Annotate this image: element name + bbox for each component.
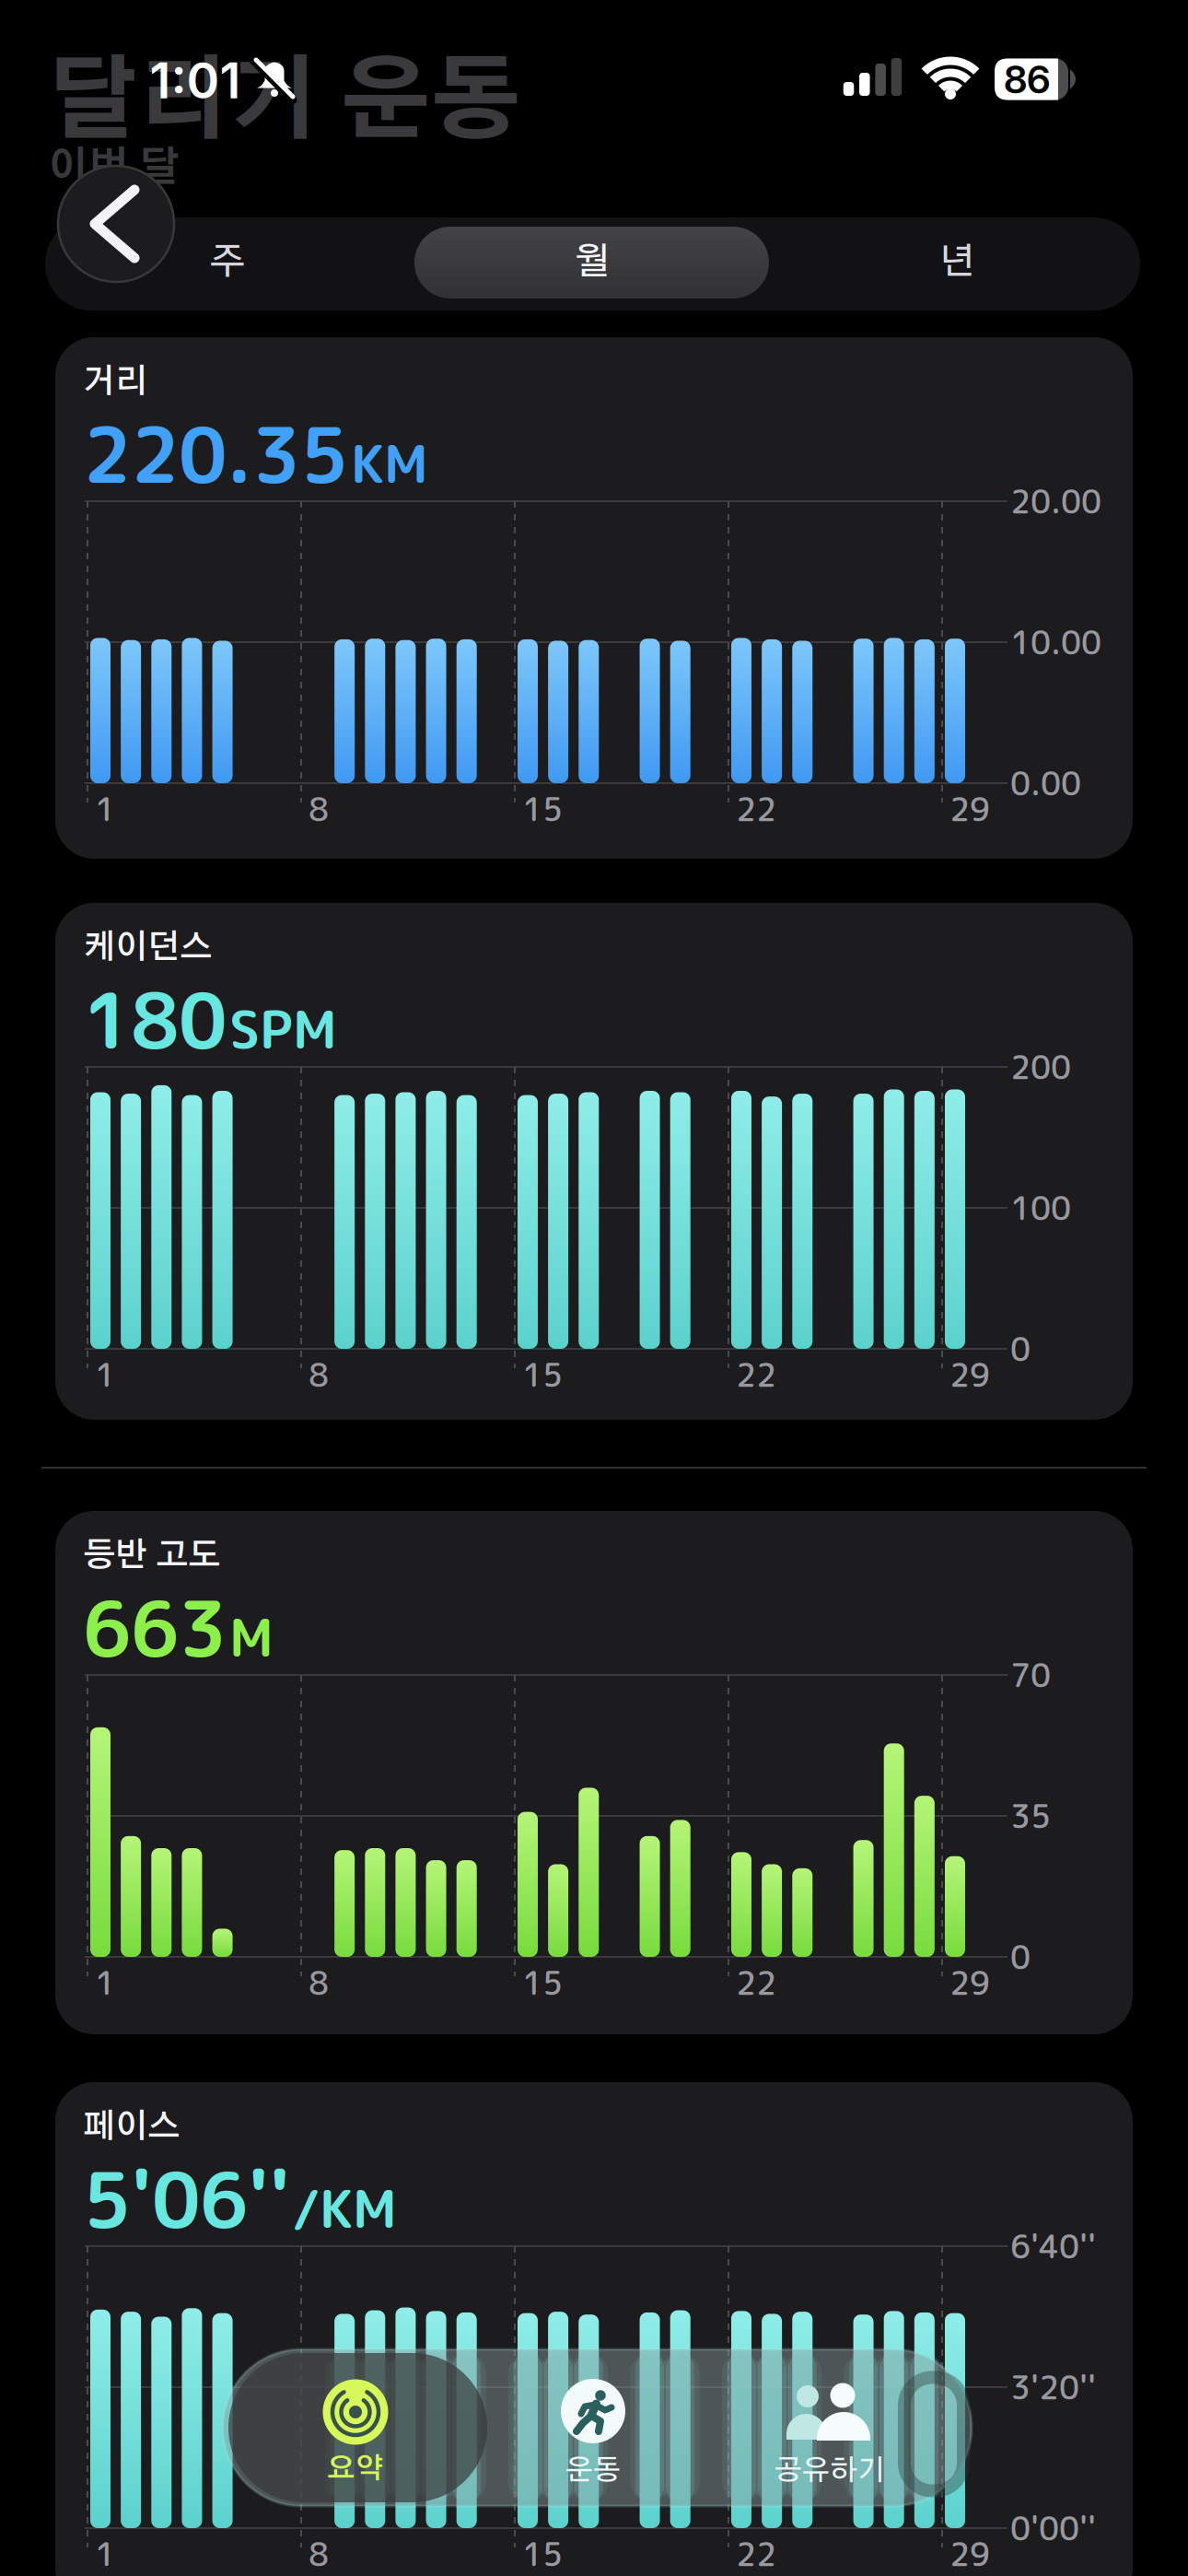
staticText: 8 [309,1352,329,1397]
button[interactable]: 주 [89,221,366,304]
staticText: 15 [522,1352,563,1397]
staticText: 8 [309,1960,329,2005]
staticText: 22 [736,1352,776,1397]
staticText: /KM [293,2171,397,2245]
staticText: 월 [574,244,610,281]
staticText: M [229,1600,274,1673]
staticText: 운동 [565,2457,621,2485]
button[interactable]: 공유하기 [701,2355,959,2506]
staticText: 22 [736,2531,776,2576]
staticText: 100 [1010,1185,1071,1230]
staticText: 주 [210,244,245,281]
staticText: SPM [229,992,337,1065]
staticText: 1:01 [150,50,241,110]
staticText: 86 [1004,56,1050,103]
staticText: 180 [83,967,227,1073]
staticText: 29 [949,1352,990,1397]
staticText: 3'20'' [1010,2365,1096,2410]
staticText: 29 [949,2531,990,2576]
staticText: 20.00 [1010,479,1101,524]
staticText: 이번 달 [48,148,180,189]
staticText: 35 [1010,1793,1051,1838]
staticText: 6'40'' [1010,2224,1096,2269]
staticText: 0 [1010,1326,1031,1371]
staticText: 0 [1010,1934,1031,1979]
staticText: 등반 고도 [83,1540,220,1573]
staticText: 15 [522,1960,563,2005]
staticText: 공유하기 [775,2457,885,2485]
staticText: KM [351,426,428,500]
staticText: 요약 [327,2455,384,2483]
staticText: 8 [309,786,329,831]
staticText: 1 [95,786,115,831]
staticText: 22 [736,786,776,831]
staticText: 페이스 [83,2111,180,2144]
staticText: 220.35 [83,402,348,507]
button[interactable]: 운동 [483,2355,704,2506]
staticText: 5'06'' [83,2146,290,2252]
staticText: 달리기 운동 [48,59,521,149]
staticText: 29 [949,1960,990,2005]
staticText: 15 [522,786,563,831]
button[interactable]: 월 [414,227,769,299]
staticText: 케이던스 [83,931,212,965]
staticText: 200 [1010,1044,1071,1089]
staticText: 거리 [83,366,147,399]
button[interactable]: Back [57,165,175,283]
staticText: 10.00 [1010,620,1101,665]
staticText: 1 [95,1960,115,2005]
staticText: 663 [83,1575,227,1681]
button[interactable]: 요약 [229,2353,487,2504]
staticText: 70 [1010,1652,1051,1697]
staticText: 8 [309,2531,329,2576]
staticText: 1 [95,1352,115,1397]
staticText: 22 [736,1960,776,2005]
staticText: 29 [949,786,990,831]
staticText: 년 [939,244,975,281]
staticText: 1 [95,2531,115,2576]
staticText: 0'00'' [1010,2506,1096,2551]
staticText: 0.00 [1010,761,1081,806]
button[interactable]: 년 [819,221,1095,304]
staticText: 15 [522,2531,563,2576]
